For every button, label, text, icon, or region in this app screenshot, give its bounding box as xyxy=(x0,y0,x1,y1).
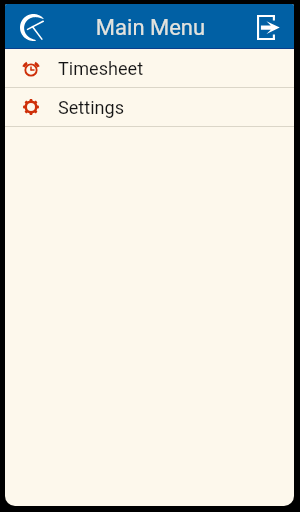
button[interactable]: Open navigation xyxy=(5,4,49,48)
button[interactable]: Timesheet xyxy=(5,49,294,87)
button[interactable]: Settings xyxy=(5,88,294,126)
staticText: Settings xyxy=(58,97,125,118)
button[interactable]: Log out xyxy=(250,4,294,48)
staticText: Timesheet xyxy=(58,58,144,79)
staticText: Main Menu xyxy=(50,15,251,41)
